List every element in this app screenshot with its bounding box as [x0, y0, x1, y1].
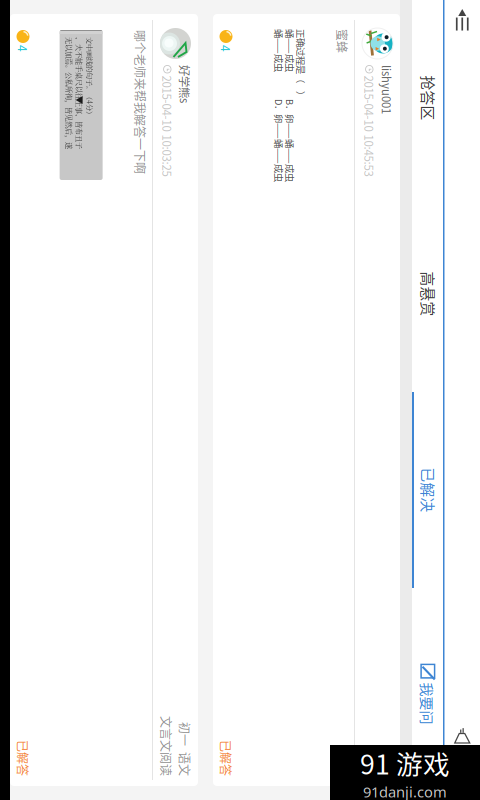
staticText: 蛹——成虫 D．卵——蛹——成虫 [0, 354, 22, 368]
staticText: 哪个老师来帮我解答一下啊 [0, 491, 14, 508]
staticText: 2015-04-10 10:03:25 [0, 464, 16, 481]
button[interactable]: 抢答区 [0, 197, 36, 228]
button[interactable]: 已解决 [232, 197, 428, 228]
staticText: 91 游戏 [360, 743, 450, 782]
button[interactable]: 我要问 [428, 197, 480, 228]
staticText: 蛹——成虫 B．卵——蛹——成虫 [0, 343, 22, 357]
staticText: 高悬赏 [111, 201, 156, 222]
staticText: 91danji.com [363, 782, 447, 800]
button[interactable]: lishyu001 [0, 240, 480, 427]
button[interactable]: 高悬赏 [36, 197, 232, 228]
staticText: 2015-04-10 10:45:53 [0, 262, 16, 279]
button[interactable]: 好学熊s [0, 442, 480, 630]
